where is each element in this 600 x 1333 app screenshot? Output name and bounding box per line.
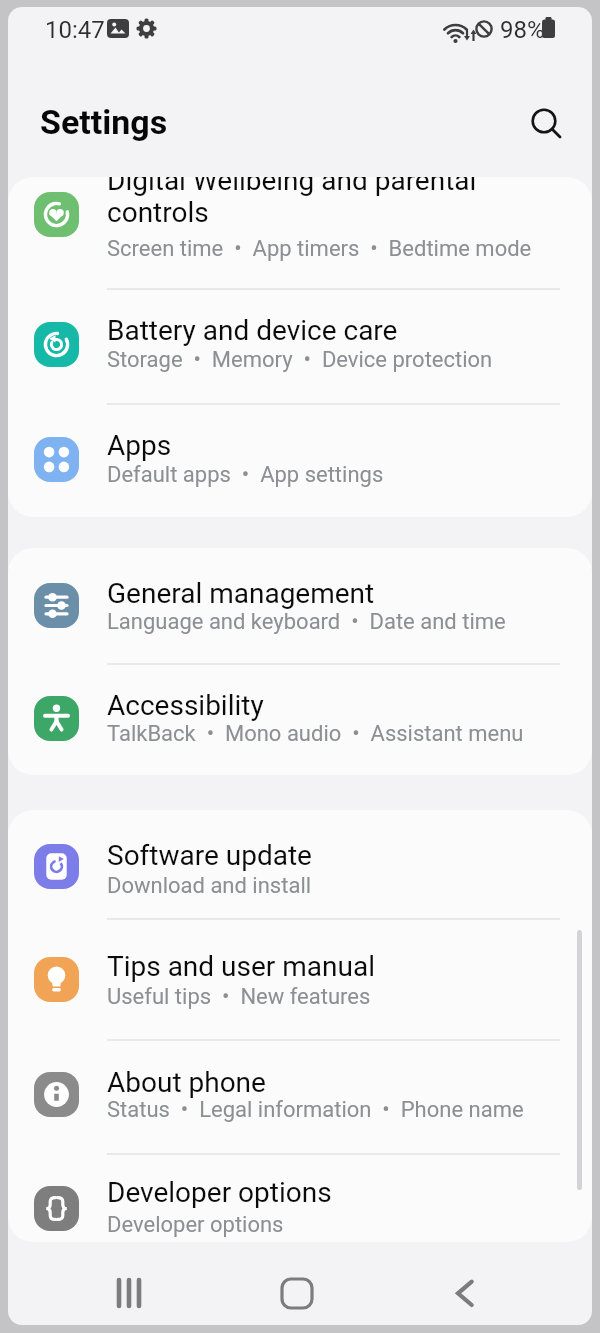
staticText: Software update [107,839,312,872]
button[interactable] [257,1260,337,1325]
staticText: Settings [40,102,168,142]
button[interactable]: Tips and user manual [8,918,592,1039]
staticText: Tips and user manual [107,950,375,983]
button[interactable]: General management [8,548,592,663]
staticText: 98% [500,16,545,44]
staticText: Developer options [107,1212,284,1238]
staticText: controls [107,196,209,229]
button[interactable]: Apps [8,403,592,517]
staticText: Accessibility [107,689,264,722]
staticText: 10:47 [45,16,105,44]
button[interactable] [89,1260,169,1325]
staticText: Storage • Memory • Device protection [107,347,493,373]
staticText: General management [107,577,375,610]
button[interactable]: About phone [8,1039,592,1153]
staticText: Download and install [107,873,312,899]
button[interactable]: Developer options [8,1153,592,1242]
button[interactable] [520,97,580,157]
staticText: Default apps • App settings [107,462,384,488]
button[interactable]: Accessibility [8,663,592,775]
button[interactable]: Digital Wellbeing and parental [8,177,592,288]
button[interactable]: Battery and device care [8,288,592,403]
staticText: Battery and device care [107,314,398,347]
button[interactable]: Software update [8,810,592,918]
staticText: About phone [107,1066,266,1099]
staticText: Digital Wellbeing and parental [107,177,477,197]
button[interactable] [425,1260,505,1325]
staticText: Useful tips • New features [107,984,371,1010]
staticText: Language and keyboard • Date and time [107,609,506,635]
staticText: Developer options [107,1176,332,1209]
staticText: Status • Legal information • Phone name [107,1097,524,1123]
staticText: Apps [107,429,172,462]
staticText: TalkBack • Mono audio • Assistant menu [107,721,524,747]
staticText: Screen time • App timers • Bedtime mode [107,236,532,262]
